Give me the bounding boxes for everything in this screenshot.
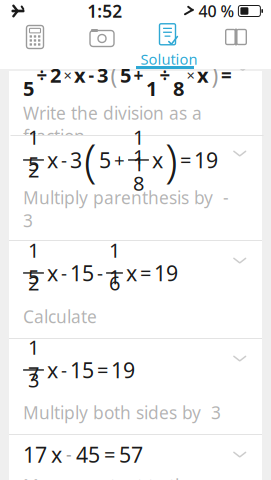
staticText: 6 xyxy=(109,269,120,296)
staticText: ( xyxy=(110,60,117,90)
staticText: x xyxy=(47,259,58,287)
staticText: 15 xyxy=(70,356,94,384)
staticText: 3 xyxy=(28,366,39,393)
staticText: Calculate xyxy=(23,305,97,328)
staticText: 18 xyxy=(173,48,184,101)
staticText: 3 xyxy=(70,146,82,174)
staticText: 15 xyxy=(70,259,94,287)
button[interactable]: Calculator xyxy=(1,20,68,68)
staticText: x xyxy=(152,146,163,174)
button[interactable]: 15 xyxy=(9,241,262,339)
staticText: Multiply parenthesis by - 3 xyxy=(23,186,229,232)
staticText: 3 xyxy=(97,62,108,88)
staticText: = xyxy=(104,441,115,468)
staticText: 1:52 xyxy=(87,0,122,22)
staticText: 19 xyxy=(194,146,218,174)
staticText: = xyxy=(140,260,151,286)
staticText: = xyxy=(180,147,191,173)
staticText: ) xyxy=(165,130,178,190)
staticText: 2 xyxy=(28,269,39,296)
staticText: 15 xyxy=(28,124,39,177)
staticText: x xyxy=(126,259,137,287)
staticText: 15 xyxy=(28,237,39,290)
staticText: x xyxy=(47,146,58,174)
staticText: 40 % xyxy=(198,0,234,22)
staticText: 17 xyxy=(28,334,39,387)
staticText: x xyxy=(47,356,58,384)
staticText: 11 xyxy=(109,237,120,290)
staticText: 2 xyxy=(28,156,39,183)
staticText: ÷ xyxy=(159,63,170,87)
staticText: Move constant to the right xyxy=(23,474,196,480)
staticText: 2 xyxy=(50,62,61,88)
staticText: 15 xyxy=(23,48,34,101)
staticText: 5 xyxy=(99,146,111,174)
staticText: x xyxy=(51,440,62,469)
staticText: 11 xyxy=(146,48,157,101)
staticText: 57 xyxy=(119,440,143,469)
staticText: - xyxy=(61,261,67,285)
staticText: 5 xyxy=(120,62,131,88)
staticText: 17 xyxy=(23,440,47,469)
staticText: x xyxy=(74,62,86,88)
button[interactable]: 15 xyxy=(9,136,262,241)
staticText: 19 xyxy=(111,356,135,384)
staticText: 19 xyxy=(154,259,178,287)
staticText: Multiply both sides by 3 xyxy=(23,401,221,424)
staticText: x xyxy=(197,62,209,88)
staticText: = xyxy=(97,357,108,383)
staticText: - xyxy=(88,63,94,86)
staticText: - xyxy=(61,358,67,382)
staticText: - xyxy=(97,261,103,285)
staticText: 11 xyxy=(133,124,144,177)
button[interactable]: 17 xyxy=(9,435,262,480)
staticText: + xyxy=(114,148,125,172)
staticText: + xyxy=(133,63,143,86)
staticText: ( xyxy=(84,130,97,190)
staticText: × xyxy=(63,65,71,85)
button[interactable]: Glossary xyxy=(202,20,269,68)
staticText: - xyxy=(61,148,67,172)
button[interactable]: Camera xyxy=(68,20,135,68)
staticText: ) xyxy=(211,60,218,90)
staticText: 18 xyxy=(133,143,144,196)
staticText: × xyxy=(186,65,194,85)
staticText: ÷ xyxy=(36,63,47,87)
staticText: = xyxy=(221,63,232,87)
staticText: - xyxy=(66,443,72,466)
staticText: 45 xyxy=(76,440,100,469)
staticText: Write the division as a fraction xyxy=(23,101,202,147)
button[interactable]: 17 xyxy=(9,339,262,435)
staticText: Solution xyxy=(140,49,197,69)
button[interactable]: Solution xyxy=(135,20,202,68)
button[interactable]: 15 xyxy=(9,71,262,136)
